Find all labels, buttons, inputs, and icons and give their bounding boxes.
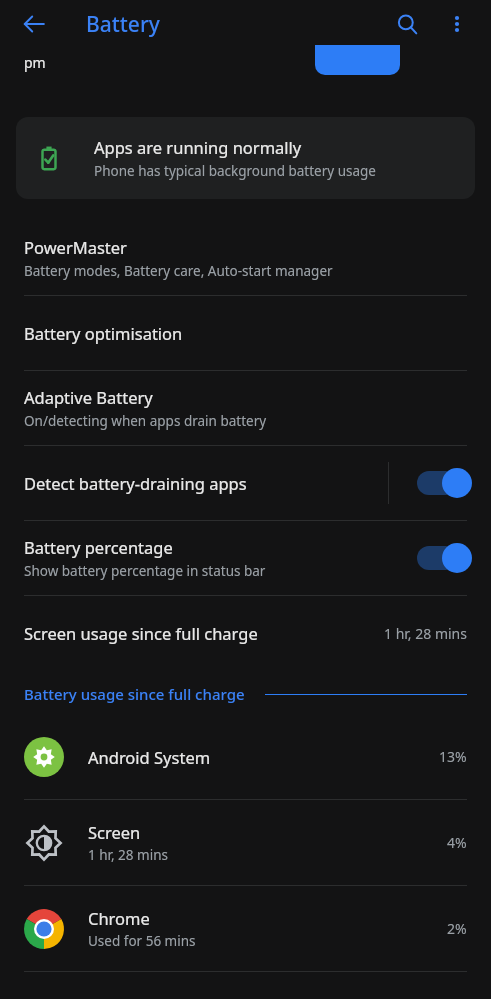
staticText: Battery usage since full charge xyxy=(24,684,245,704)
staticText: 1 hr, 28 mins xyxy=(88,846,168,864)
staticText: Screen usage since full charge xyxy=(24,622,384,644)
staticText: 13% xyxy=(439,747,467,766)
staticText: PowerMaster xyxy=(24,236,127,258)
staticText: Battery percentage xyxy=(24,536,173,558)
staticText: 1 hr, 28 mins xyxy=(384,624,467,643)
button[interactable]: Toggle xyxy=(417,543,473,573)
button[interactable]: Screen xyxy=(0,800,491,885)
button[interactable]: Apps are running normally xyxy=(16,117,475,199)
button[interactable]: Detect battery-draining apps xyxy=(0,446,491,520)
staticText: Battery modes, Battery care, Auto-start … xyxy=(24,262,333,280)
button[interactable]: Android System xyxy=(0,714,491,799)
button[interactable]: Screen usage since full charge xyxy=(0,596,491,670)
staticText: Used for 56 mins xyxy=(88,932,196,950)
staticText: Battery optimisation xyxy=(24,322,183,344)
button[interactable]: Adaptive Battery xyxy=(0,371,491,445)
staticText: Battery xyxy=(86,10,160,39)
staticText: pm xyxy=(24,53,46,72)
staticText: 2% xyxy=(447,919,467,938)
button[interactable]: Back xyxy=(12,2,56,46)
staticText: Show battery percentage in status bar xyxy=(24,562,266,580)
staticText: Screen xyxy=(88,821,141,843)
button[interactable]: Toggle xyxy=(417,468,473,498)
staticText: 4% xyxy=(447,833,467,852)
staticText: Detect battery-draining apps xyxy=(24,472,247,494)
staticText: Phone has typical background battery usa… xyxy=(94,162,376,180)
button[interactable]: PowerMaster xyxy=(0,221,491,295)
button[interactable]: Battery optimisation xyxy=(0,296,491,370)
staticText: Android System xyxy=(88,746,211,768)
button[interactable]: Battery percentage xyxy=(0,521,491,595)
button[interactable]: Search xyxy=(385,2,429,46)
button[interactable]: Chrome xyxy=(0,886,491,971)
staticText: Apps are running normally xyxy=(94,136,302,158)
staticText: Adaptive Battery xyxy=(24,386,153,408)
staticText: Chrome xyxy=(88,907,150,929)
button[interactable]: More options xyxy=(437,4,477,44)
staticText: On/detecting when apps drain battery xyxy=(24,412,267,430)
